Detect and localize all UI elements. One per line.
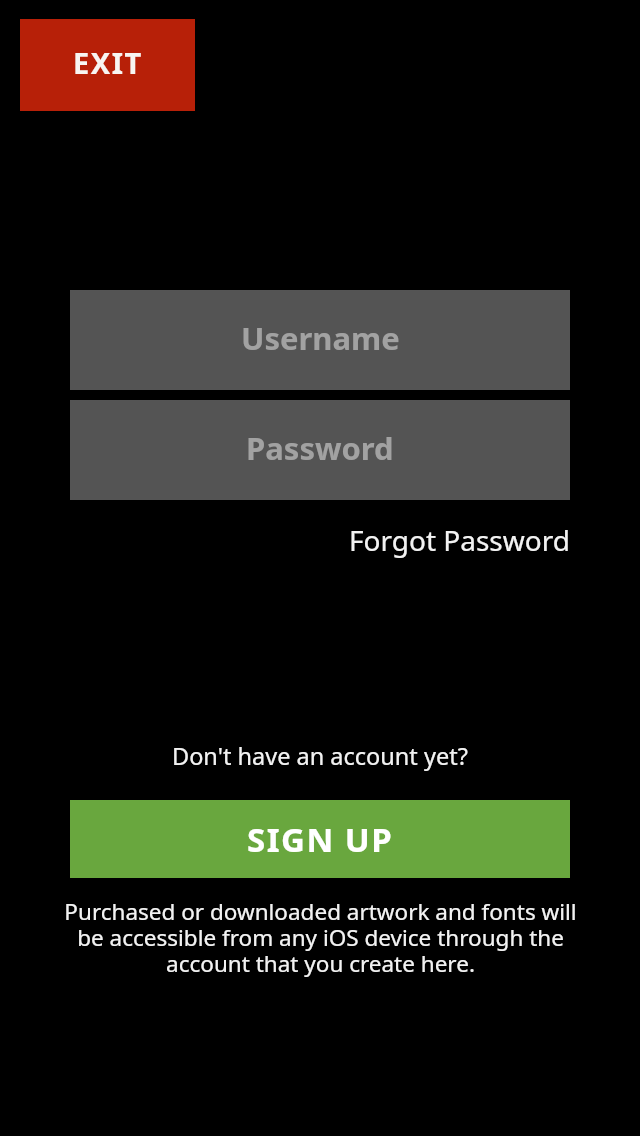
staticText: Username <box>241 317 400 359</box>
staticText: Password <box>246 427 394 469</box>
button[interactable]: SIGN UP <box>70 800 570 878</box>
staticText: Purchased or downloaded artwork and font… <box>64 896 577 979</box>
staticText: EXIT <box>73 43 143 82</box>
button[interactable]: Forgot Password <box>349 521 570 559</box>
button[interactable]: EXIT <box>20 19 195 111</box>
staticText: Don't have an account yet? <box>172 740 468 772</box>
button[interactable]: Password <box>70 400 570 500</box>
staticText: SIGN UP <box>247 817 394 862</box>
button[interactable]: Username <box>70 290 570 390</box>
